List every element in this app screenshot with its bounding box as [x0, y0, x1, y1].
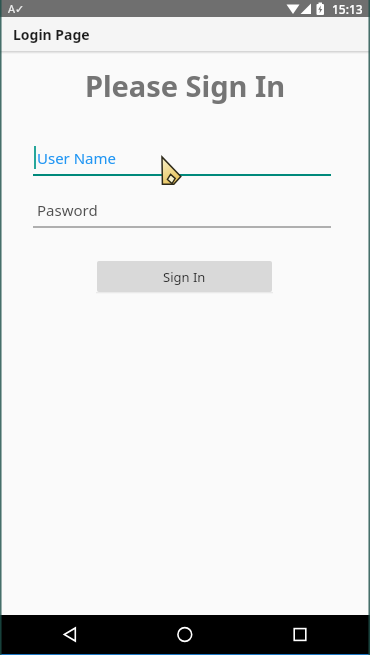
- button[interactable]: [0, 615, 124, 655]
- staticText: Please Sign In: [0, 66, 370, 105]
- staticText: 15:13: [332, 1, 363, 17]
- button[interactable]: User Name: [33, 140, 331, 180]
- button[interactable]: Sign In: [97, 261, 272, 292]
- staticText: Sign In: [163, 268, 206, 286]
- button[interactable]: Pasword: [33, 195, 331, 230]
- staticText: Login Page: [13, 25, 90, 44]
- staticText: A✓: [8, 1, 25, 16]
- staticText: User Name: [37, 148, 117, 168]
- button[interactable]: [247, 615, 370, 655]
- staticText: Pasword: [37, 200, 98, 220]
- button[interactable]: [124, 615, 247, 655]
